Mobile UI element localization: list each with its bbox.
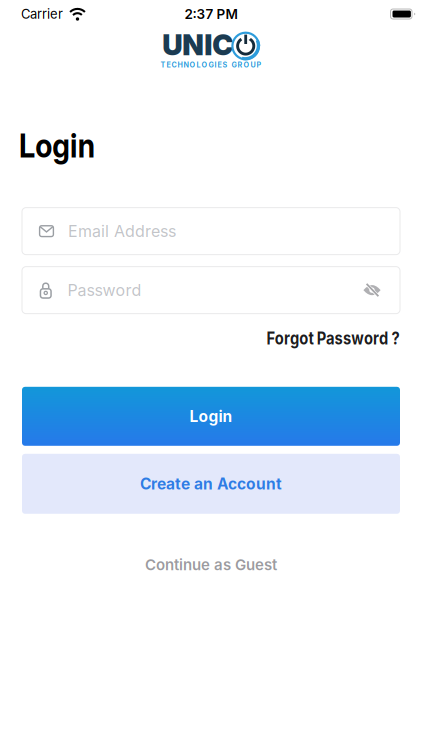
button[interactable]: Login xyxy=(22,387,400,446)
button[interactable]: Password xyxy=(22,267,400,314)
staticText: Password xyxy=(67,280,141,300)
staticText: 2:37 PM xyxy=(184,6,237,22)
button[interactable]: Create an Account xyxy=(22,454,400,514)
button[interactable]: Continue as Guest xyxy=(145,556,277,574)
button[interactable]: Show password xyxy=(363,283,400,298)
staticText: T E C H N O L O G I E S G R O U P xyxy=(160,60,261,69)
staticText: Continue as Guest xyxy=(145,556,277,574)
button[interactable]: Forgot Password ? xyxy=(241,328,400,349)
staticText: Create an Account xyxy=(140,474,282,493)
staticText: Login xyxy=(189,407,232,426)
staticText: Email Address xyxy=(68,221,176,241)
staticText: Forgot Password ? xyxy=(241,328,400,349)
staticText: Login xyxy=(19,124,108,166)
button[interactable]: Email Address xyxy=(22,208,400,255)
staticText: UNIC xyxy=(162,28,233,62)
staticText: Carrier xyxy=(21,6,63,22)
